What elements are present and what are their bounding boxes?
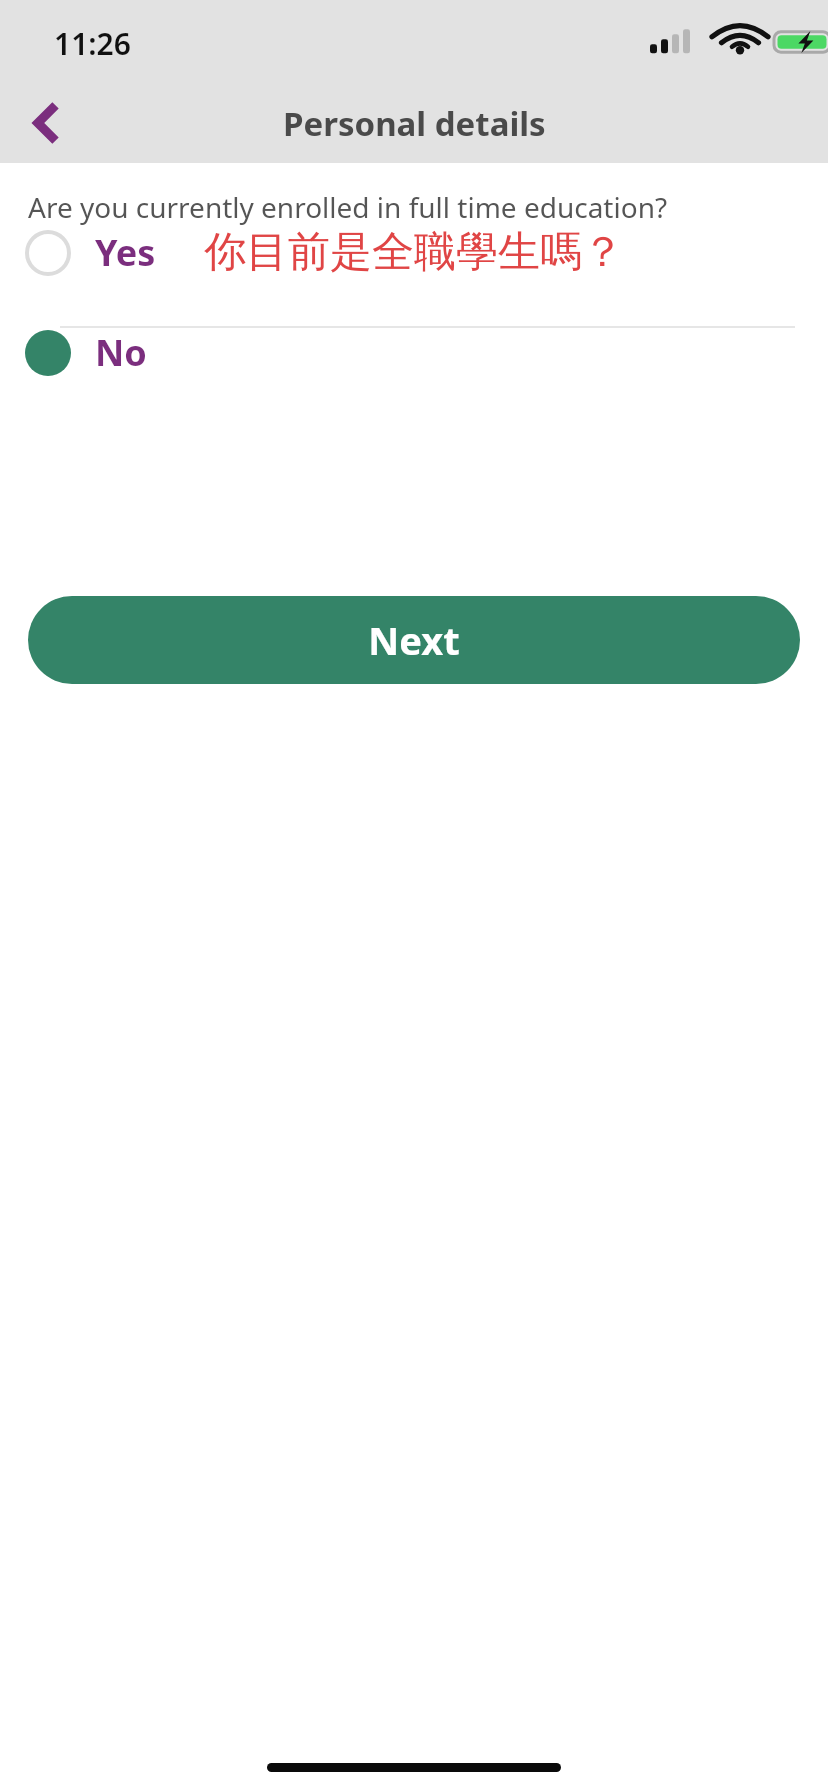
staticText: Are you currently enrolled in full time … <box>28 188 668 226</box>
button[interactable]: Next <box>28 596 800 684</box>
staticText: Yes <box>95 228 156 277</box>
staticText: No <box>95 328 147 377</box>
button[interactable]: Yes <box>0 226 828 326</box>
staticText: 你目前是全職學生嗎？ <box>204 226 624 279</box>
button[interactable]: No <box>0 328 828 428</box>
staticText: 11:26 <box>54 23 131 64</box>
button[interactable]: Back <box>8 88 84 158</box>
staticText: Personal details <box>283 101 546 146</box>
staticText: Next <box>368 614 460 666</box>
